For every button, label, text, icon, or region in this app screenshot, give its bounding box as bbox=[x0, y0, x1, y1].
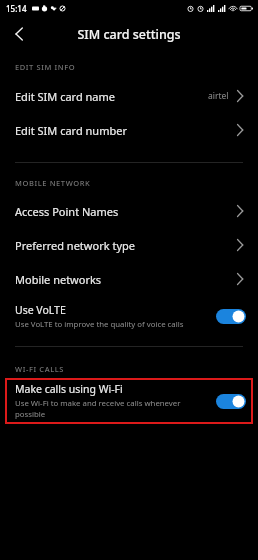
staticText: Use Wi-Fi to make and receive calls when… bbox=[15, 398, 211, 420]
button[interactable]: Edit SIM card number bbox=[0, 113, 258, 147]
staticText: Preferred network type bbox=[15, 238, 135, 253]
staticText: Use VoLTE bbox=[15, 303, 66, 317]
staticText: Mobile networks bbox=[15, 272, 102, 287]
staticText: Use VoLTE to improve the quality of voic… bbox=[15, 319, 184, 330]
staticText: Make calls using Wi-Fi bbox=[15, 382, 123, 396]
button[interactable]: Access Point Names bbox=[0, 194, 258, 228]
staticText: Edit SIM card number bbox=[15, 123, 127, 138]
button[interactable]: Back bbox=[9, 24, 29, 44]
button[interactable]: Mobile networks bbox=[0, 262, 258, 296]
button[interactable]: Preferred network type bbox=[0, 228, 258, 262]
staticText: WI-FI CALLS bbox=[15, 364, 65, 374]
button[interactable]: Use VoLTE bbox=[0, 296, 258, 336]
staticText: MOBILE NETWORK bbox=[15, 178, 91, 188]
staticText: airtel bbox=[208, 90, 229, 102]
button[interactable]: Make calls using Wi-Fi bbox=[6, 379, 252, 423]
staticText: 15:14 bbox=[6, 3, 27, 14]
button[interactable]: Toggle bbox=[216, 309, 246, 324]
button[interactable]: Toggle bbox=[216, 394, 246, 409]
button[interactable]: Edit SIM card name bbox=[0, 79, 258, 113]
staticText: Edit SIM card name bbox=[15, 89, 116, 104]
staticText: SIM card settings bbox=[77, 26, 181, 43]
staticText: Access Point Names bbox=[15, 204, 119, 219]
staticText: EDIT SIM INFO bbox=[15, 62, 76, 72]
